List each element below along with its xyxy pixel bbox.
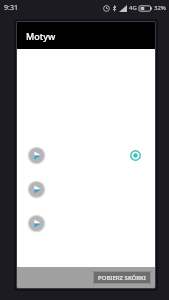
staticText: 9:31 xyxy=(4,3,18,13)
button[interactable]: Play preview xyxy=(26,145,47,166)
button[interactable]: Play preview xyxy=(26,213,47,234)
button[interactable]: Play preview xyxy=(17,212,155,234)
staticText: 4G xyxy=(129,4,137,12)
button[interactable]: Play preview xyxy=(26,179,47,200)
staticText: POBIERZ SKÓRKI xyxy=(98,274,146,282)
button[interactable]: POBIERZ SKÓRKI xyxy=(93,271,151,284)
button[interactable]: Selected theme xyxy=(128,148,142,162)
button[interactable]: Play preview xyxy=(17,144,155,166)
staticText: Motyw xyxy=(26,30,56,42)
staticText: 32% xyxy=(154,4,166,12)
button[interactable]: Play preview xyxy=(17,178,155,200)
button[interactable]: Motyw xyxy=(17,22,155,49)
